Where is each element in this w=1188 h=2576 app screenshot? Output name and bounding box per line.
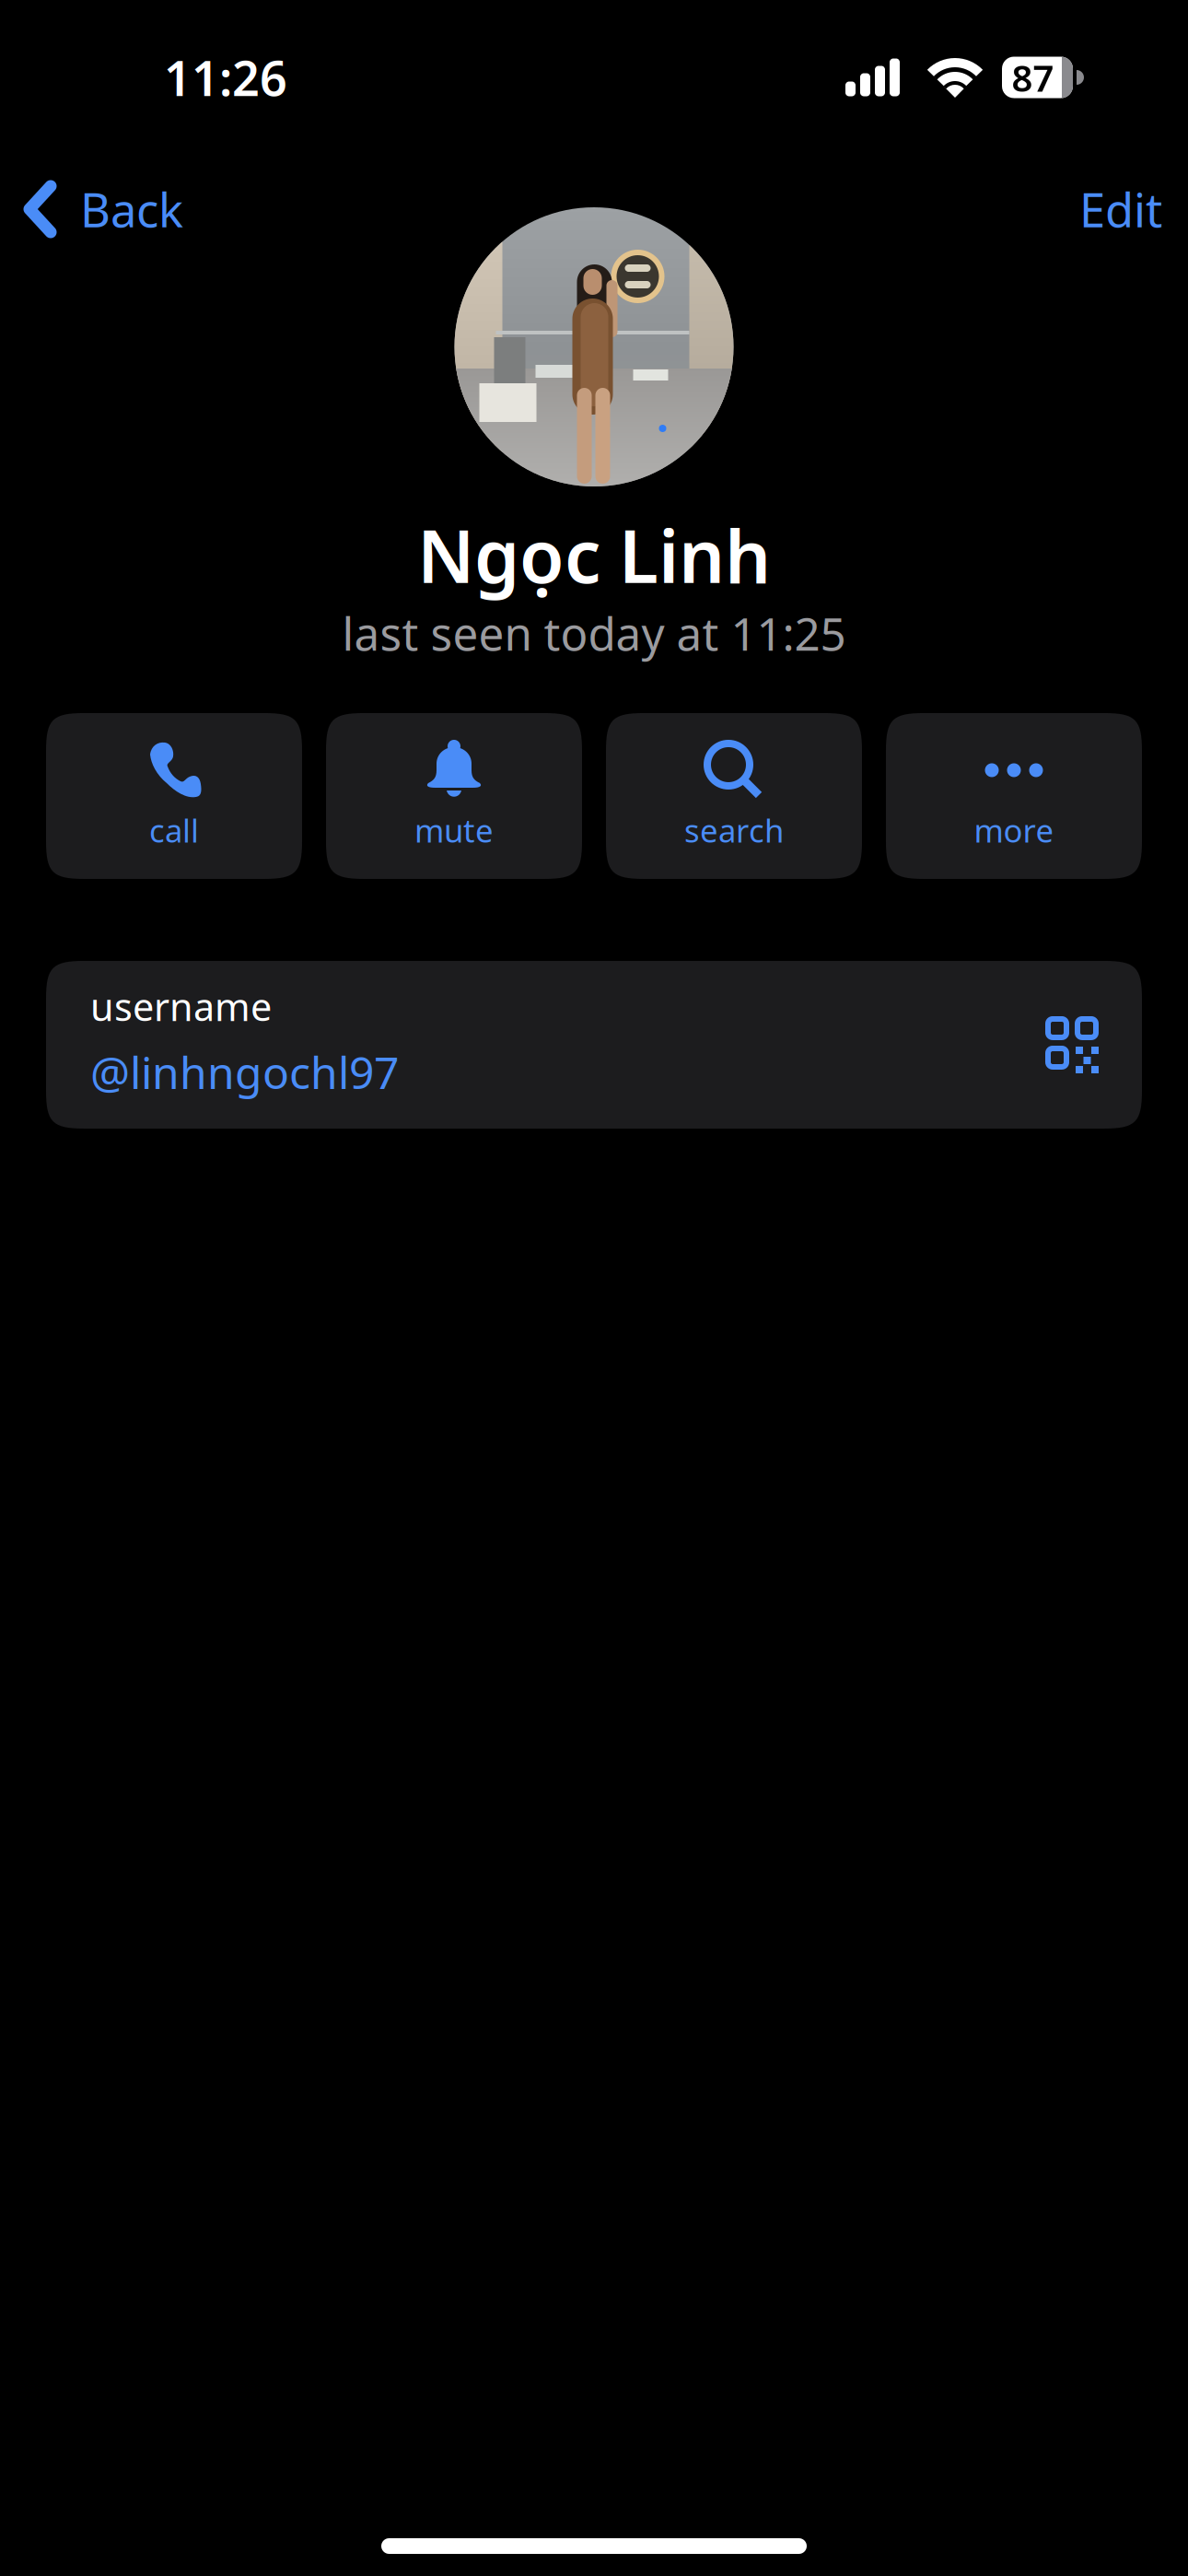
staticText: 87 — [1012, 53, 1054, 102]
button[interactable]: call — [46, 713, 302, 879]
button[interactable]: username — [46, 961, 1142, 1129]
staticText: mute — [414, 809, 494, 851]
staticText: Edit — [1079, 178, 1162, 240]
staticText: @linhngochl97 — [90, 1043, 399, 1101]
staticText: more — [974, 809, 1054, 851]
button[interactable]: search — [606, 713, 862, 879]
staticText: last seen today at 11:25 — [342, 603, 846, 663]
button[interactable]: mute — [326, 713, 582, 879]
staticText: search — [684, 809, 784, 851]
staticText: 11:26 — [164, 46, 287, 109]
staticText: Ngọc Linh — [417, 507, 771, 603]
button[interactable]: Back — [0, 169, 204, 249]
staticText: call — [149, 809, 199, 851]
staticText: Back — [80, 178, 183, 240]
button[interactable]: more — [886, 713, 1142, 879]
staticText: username — [90, 981, 272, 1032]
button[interactable]: Edit — [1052, 169, 1188, 249]
